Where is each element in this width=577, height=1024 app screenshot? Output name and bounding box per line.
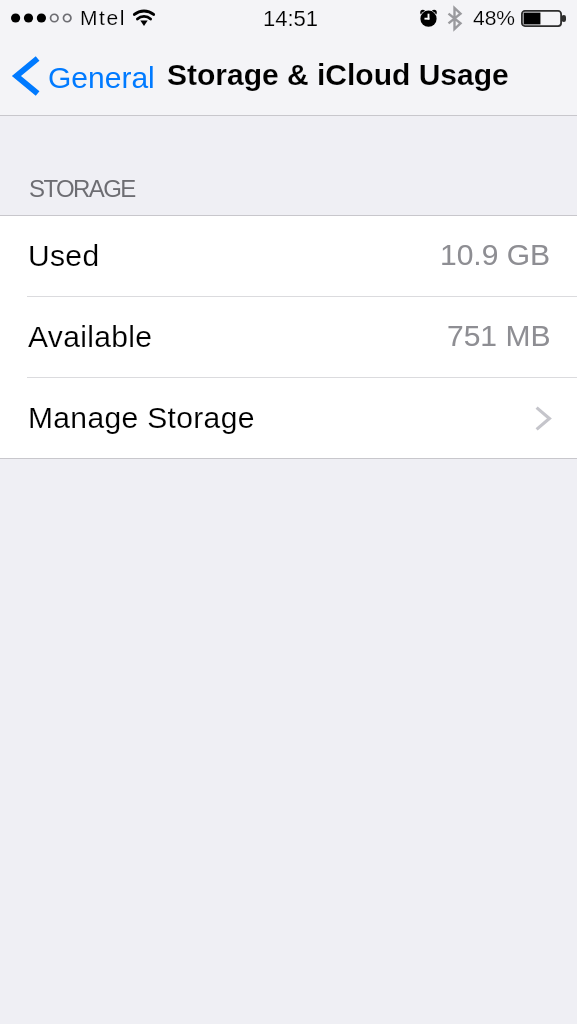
staticText: 10.9 GB: [440, 238, 551, 272]
staticText: 14:51: [263, 6, 319, 31]
button[interactable]: Back: [7, 49, 165, 99]
staticText: 751 MB: [447, 319, 551, 353]
staticText: Storage & iCloud Usage: [167, 58, 509, 92]
button[interactable]: Available: [0, 297, 577, 377]
staticText: 48%: [473, 6, 516, 29]
staticText: Mtel: [80, 6, 127, 29]
staticText: General: [48, 61, 155, 95]
staticText: Available: [28, 320, 153, 354]
staticText: STORAGE: [29, 175, 135, 202]
button[interactable]: Used: [0, 216, 577, 296]
staticText: Manage Storage: [28, 401, 255, 435]
other: Back: [14, 56, 40, 96]
button[interactable]: Manage Storage: [0, 378, 577, 458]
staticText: Used: [28, 239, 100, 273]
